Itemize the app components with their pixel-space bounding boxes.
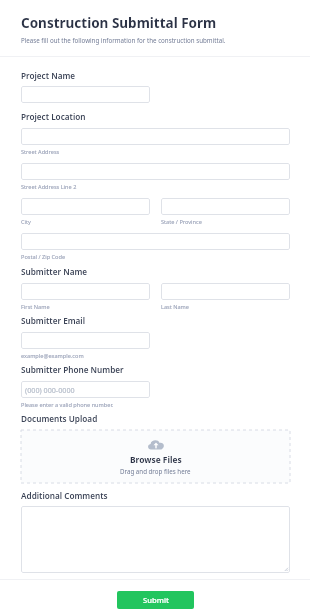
staticText: Submit [143, 595, 169, 605]
staticText: (000) 000-0000 [25, 385, 75, 395]
button[interactable] [161, 283, 290, 300]
staticText: Construction Submittal Form [21, 14, 217, 32]
staticText: example@example.com [21, 352, 84, 360]
staticText: Submitter Email [21, 315, 86, 326]
button[interactable] [21, 163, 290, 180]
staticText: Street Address Line 2 [21, 183, 77, 191]
staticText: Please fill out the following informatio… [21, 36, 226, 44]
button[interactable] [161, 198, 290, 215]
staticText: Postal / Zip Code [21, 253, 66, 261]
button[interactable] [21, 233, 290, 250]
staticText: Please enter a valid phone number. [21, 401, 114, 409]
staticText: First Name [21, 303, 50, 311]
staticText: Additional Comments [21, 490, 108, 501]
staticText: Street Address [21, 148, 60, 156]
staticText: Project Name [21, 70, 76, 81]
staticText: State / Province [161, 218, 202, 226]
staticText: Submitter Phone Number [21, 364, 124, 375]
button[interactable]: (000) 000-0000 [21, 381, 150, 398]
button[interactable] [21, 332, 150, 349]
button[interactable] [21, 128, 290, 145]
staticText: Browse Files [130, 454, 182, 465]
button[interactable]: Submit [117, 591, 194, 609]
button[interactable]: Browse Files, drag and drop files here [21, 430, 290, 483]
staticText: Documents Upload [21, 413, 98, 424]
staticText: Submitter Name [21, 266, 88, 277]
button[interactable] [21, 506, 290, 573]
staticText: Last Name [161, 303, 189, 311]
staticText: Project Location [21, 111, 86, 122]
staticText: City [21, 218, 31, 226]
staticText: Drag and drop files here [120, 467, 191, 475]
button[interactable] [21, 283, 150, 300]
button[interactable] [21, 86, 150, 103]
button[interactable] [21, 198, 150, 215]
